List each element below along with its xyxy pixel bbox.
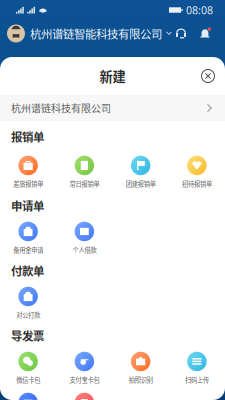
staticText: 拍照识别 bbox=[129, 375, 153, 384]
button[interactable]: 对公打款 bbox=[0, 285, 56, 321]
staticText: 申请单 bbox=[11, 197, 44, 214]
staticText: 团建报销单 bbox=[126, 179, 156, 188]
staticText: 新建 bbox=[99, 66, 125, 86]
button[interactable]: 常日报销单 bbox=[56, 154, 112, 190]
staticText: 支付宝卡包 bbox=[69, 375, 99, 384]
button[interactable]: 邮箱导入 bbox=[0, 391, 56, 400]
staticText: 08:08 bbox=[186, 3, 213, 17]
button[interactable]: 扫码上传 bbox=[169, 350, 225, 386]
button[interactable]: 支付宝卡包 bbox=[56, 350, 112, 386]
button[interactable]: Customer support bbox=[170, 22, 192, 44]
staticText: 对公打款 bbox=[16, 310, 40, 319]
button[interactable]: 团建报销单 bbox=[112, 154, 169, 190]
button[interactable]: 杭州谱链科技有限公司 bbox=[0, 95, 225, 121]
staticText: 杭州谱链科技有限公司 bbox=[11, 101, 111, 115]
staticText: 常日报销单 bbox=[69, 179, 99, 188]
staticText: 扫码上传 bbox=[185, 375, 209, 384]
staticText: 备用金申请 bbox=[13, 245, 43, 254]
button[interactable]: 微信卡包 bbox=[0, 350, 56, 386]
button[interactable]: 差旅报销单 bbox=[0, 154, 56, 190]
staticText: 微信卡包 bbox=[16, 375, 40, 384]
staticText: 导发票 bbox=[11, 327, 44, 344]
staticText: 付款单 bbox=[11, 262, 44, 279]
button[interactable]: 个人借款 bbox=[56, 220, 112, 256]
staticText: 招待报销单 bbox=[182, 179, 212, 188]
staticText: 杭州谱链智能科技有限公司 bbox=[30, 25, 162, 42]
button[interactable]: 招待报销单 bbox=[169, 154, 225, 190]
button[interactable]: 拍照识别 bbox=[112, 350, 169, 386]
button[interactable]: Close bbox=[196, 64, 220, 88]
button[interactable]: 杭州谱链智能科技有限公司 bbox=[0, 24, 172, 42]
staticText: 报销单 bbox=[11, 128, 44, 145]
button[interactable]: 备用金申请 bbox=[0, 220, 56, 256]
button[interactable]: Notifications bbox=[194, 22, 216, 44]
staticText: 差旅报销单 bbox=[13, 179, 43, 188]
button[interactable]: 电子发票 bbox=[56, 391, 112, 400]
staticText: 个人借款 bbox=[72, 245, 96, 254]
